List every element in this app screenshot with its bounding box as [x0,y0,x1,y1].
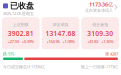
staticText: 较上一日缩量-1773亿 [81,64,118,69]
staticText: +27.93 [8,39,19,44]
staticText: 已收盘 [10,1,34,11]
staticText: +1.36% [101,39,113,44]
staticText: +41.82 [87,39,98,44]
staticText: 今日成交额总计17390亿 [3,64,45,69]
staticText: 3109.30 [87,29,113,38]
button[interactable]: 1173.36亿 [85,1,118,13]
staticText: 创业板指 [92,22,108,27]
staticText: 北向资金净流入 [85,8,113,13]
staticText: +164.96 [46,39,59,44]
staticText: 涨 4287 [105,51,118,56]
staticText: 1173.36亿 [89,1,113,8]
staticText: +1.08% [62,39,74,44]
staticText: +0.39% [22,39,34,44]
button[interactable]: 上证指数 [2,17,40,49]
button[interactable]: 创业板指 [81,17,119,49]
staticText: 3902.81 [8,29,34,38]
staticText: 深证成指 [52,22,68,27]
staticText: 上证指数 [13,22,29,27]
staticText: 13147.68 [45,29,75,38]
button[interactable]: 深证成指 [42,17,79,49]
staticText: 跌 975 [3,51,14,56]
staticText: 2025-12-05 星期五 [3,11,34,16]
